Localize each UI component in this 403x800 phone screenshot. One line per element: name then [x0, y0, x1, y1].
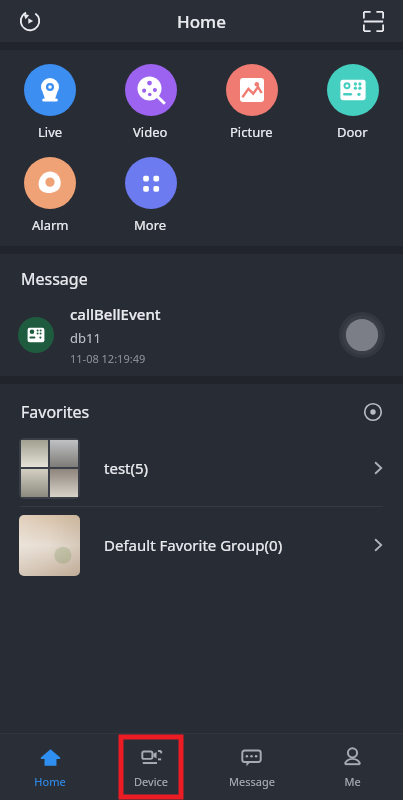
button[interactable]: Alarm	[0, 155, 100, 236]
staticText: Home	[34, 774, 66, 789]
button[interactable]: Scan QR code	[353, 1, 393, 41]
button[interactable]: Device	[121, 737, 181, 797]
staticText: callBellEvent	[70, 304, 161, 324]
staticText: Favorites	[21, 401, 90, 423]
button[interactable]: test(5)	[0, 430, 403, 506]
staticText: Message	[229, 774, 275, 789]
staticText: db11	[70, 329, 101, 347]
button[interactable]: Message	[201, 734, 302, 800]
staticText: Home	[177, 10, 226, 33]
staticText: Device	[134, 774, 168, 789]
staticText: More	[134, 216, 167, 234]
button[interactable]: Me	[302, 734, 403, 800]
button[interactable]: Favorites settings	[357, 396, 389, 428]
button[interactable]: callBellEvent	[0, 294, 403, 376]
button[interactable]: Video	[100, 62, 201, 143]
button[interactable]: Home	[0, 734, 100, 800]
button[interactable]: Playback history	[10, 1, 50, 41]
button[interactable]: Default Favorite Group(0)	[0, 507, 403, 583]
staticText: Picture	[230, 123, 273, 141]
button[interactable]: Picture	[201, 62, 302, 143]
staticText: Video	[133, 123, 168, 141]
staticText: Live	[38, 123, 63, 141]
button[interactable]: More	[100, 155, 201, 236]
staticText: Default Favorite Group(0)	[104, 535, 369, 555]
button[interactable]: Live	[0, 62, 100, 143]
staticText: 11-08 12:19:49	[70, 351, 146, 366]
button[interactable]: Door	[302, 62, 403, 143]
staticText: Message	[21, 268, 88, 290]
staticText: Alarm	[32, 216, 69, 234]
staticText: Me	[344, 774, 361, 789]
staticText: test(5)	[104, 458, 369, 478]
staticText: Door	[337, 123, 368, 141]
